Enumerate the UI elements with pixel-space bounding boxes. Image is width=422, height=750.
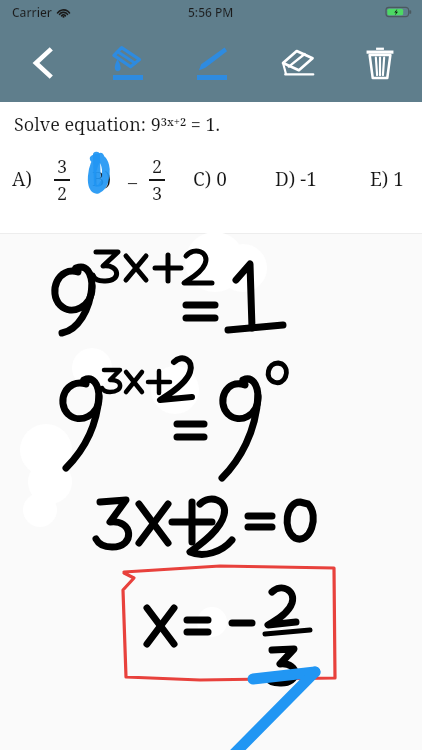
staticText: 3 [152, 181, 163, 206]
staticText: E) 1 [370, 166, 404, 192]
button[interactable]: Delete [352, 35, 408, 91]
staticText: A) [12, 166, 32, 192]
staticText: 3 [57, 154, 68, 179]
staticText: 5:56 PM [188, 4, 234, 20]
staticText: Carrier [12, 4, 52, 20]
button[interactable]: Pen [183, 34, 241, 92]
staticText: B) [92, 166, 112, 192]
staticText: 2 [152, 154, 163, 179]
staticText: Solve equation: 93x+2 = 1. [14, 112, 221, 137]
button[interactable]: Fill color [99, 34, 157, 92]
staticText: C) 0 [193, 166, 227, 192]
button[interactable]: Eraser [268, 35, 324, 91]
staticText: D) -1 [275, 166, 317, 192]
staticText: 2 [57, 181, 68, 206]
button[interactable]: Back [16, 36, 70, 90]
staticText: – [128, 170, 137, 195]
